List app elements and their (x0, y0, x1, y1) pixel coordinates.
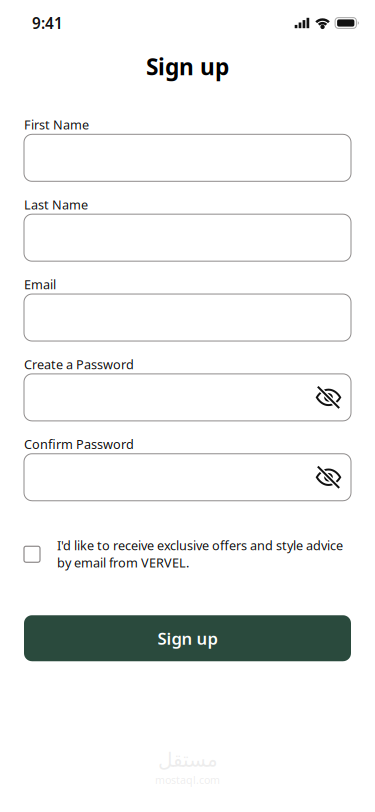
staticText: by email from VERVEL. (57, 554, 189, 571)
staticText: Email (24, 276, 56, 293)
button[interactable]: I'd like to receive exclusive offers and… (24, 537, 351, 571)
staticText: Confirm Password (24, 435, 134, 453)
staticText: I'd like to receive exclusive offers and… (57, 537, 343, 554)
button[interactable]: Show password (306, 454, 351, 501)
staticText: mostaql.com (155, 772, 220, 787)
staticText: 9:41 (32, 13, 63, 33)
button[interactable]: Show password (306, 374, 351, 421)
staticText: Sign up (146, 51, 229, 82)
staticText: Create a Password (24, 356, 134, 373)
button[interactable]: Sign up (24, 615, 351, 661)
staticText: Last Name (24, 196, 88, 213)
staticText: مستقل (157, 748, 217, 771)
staticText: Sign up (157, 627, 217, 650)
staticText: First Name (24, 116, 89, 133)
